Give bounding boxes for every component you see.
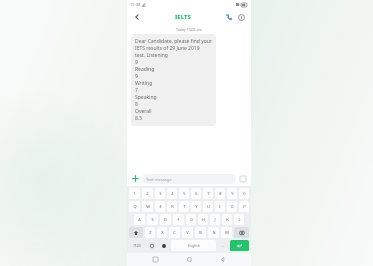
staticText: 3 (159, 191, 162, 196)
button[interactable]: F (173, 214, 184, 225)
button[interactable]: N (208, 227, 219, 238)
button[interactable]: 6 (191, 188, 201, 199)
staticText: test. Listening (135, 52, 168, 59)
button[interactable]: Backspace (234, 227, 249, 238)
button[interactable]: Emoji (147, 240, 157, 251)
button[interactable]: Back (131, 11, 143, 23)
button[interactable]: Recents (150, 254, 161, 265)
staticText: 7 (135, 87, 138, 94)
button[interactable]: P (239, 201, 249, 212)
staticText: 7 (207, 191, 210, 196)
button[interactable]: Y (191, 201, 201, 212)
staticText: W (146, 204, 150, 209)
staticText: D (164, 217, 167, 222)
button[interactable]: Home (184, 254, 195, 265)
staticText: 6 (195, 191, 198, 196)
staticText: T (183, 204, 186, 209)
button[interactable]: R (167, 201, 177, 212)
staticText: X (161, 230, 164, 235)
staticText: S (151, 217, 154, 222)
button[interactable]: 1 (129, 188, 140, 199)
button[interactable]: T (179, 201, 189, 212)
staticText: B (199, 230, 202, 235)
staticText: . (222, 243, 224, 248)
button[interactable]: Q (129, 201, 140, 212)
button[interactable]: 4 (167, 188, 177, 199)
button[interactable]: 8 (215, 188, 225, 199)
staticText: 8 (219, 191, 222, 196)
button[interactable]: S (147, 214, 158, 225)
staticText: 8 (135, 101, 138, 108)
staticText: ?123 (133, 243, 141, 248)
button[interactable]: Back (217, 254, 228, 265)
staticText: 0 (243, 191, 246, 196)
button[interactable]: L (234, 214, 244, 225)
button[interactable]: W (142, 201, 153, 212)
button[interactable]: Info (235, 11, 247, 23)
button[interactable]: 2 (142, 188, 153, 199)
button[interactable]: 7 (203, 188, 213, 199)
button[interactable]: 3 (155, 188, 165, 199)
button[interactable]: Dear Candidate, please find your (131, 34, 216, 126)
button[interactable]: A (134, 214, 145, 225)
button[interactable]: I (215, 201, 225, 212)
button[interactable]: D (160, 214, 171, 225)
button[interactable]: 5 (179, 188, 189, 199)
button[interactable]: H (198, 214, 208, 225)
staticText: M (225, 230, 229, 235)
button[interactable]: E (155, 201, 165, 212)
staticText: 8.5 (135, 115, 143, 122)
button[interactable]: U (203, 201, 213, 212)
button[interactable]: M (221, 227, 232, 238)
button[interactable]: G (186, 214, 196, 225)
staticText: J (214, 217, 216, 222)
staticText: P (243, 204, 246, 209)
staticText: N (212, 230, 216, 235)
button[interactable]: V (182, 227, 193, 238)
staticText: V (186, 230, 189, 235)
button[interactable]: Z (145, 227, 155, 238)
staticText: 9 (135, 59, 138, 66)
staticText: L (238, 217, 241, 222)
staticText: 2 (146, 191, 149, 196)
staticText: Q (133, 204, 137, 209)
button[interactable]: K (222, 214, 232, 225)
button[interactable]: B (195, 227, 206, 238)
staticText: A (138, 217, 141, 222)
button[interactable]: ?123 (129, 240, 145, 251)
staticText: Dear Candidate, please find your (135, 38, 212, 45)
button[interactable]: Add attachment (130, 173, 141, 184)
staticText: IELTS (175, 13, 191, 21)
staticText: K (226, 217, 229, 222)
staticText: Writing (135, 80, 153, 87)
staticText: English (188, 243, 200, 248)
staticText: 9 (231, 191, 234, 196)
staticText: H (202, 217, 205, 222)
button[interactable]: O (227, 201, 237, 212)
button[interactable]: Enter (230, 240, 249, 251)
staticText: Reading (135, 66, 155, 73)
button[interactable]: J (210, 214, 220, 225)
button[interactable]: Text message (142, 174, 236, 184)
staticText: C (173, 230, 176, 235)
button[interactable]: C (169, 227, 180, 238)
button[interactable]: Call (223, 11, 235, 23)
staticText: 9 (135, 73, 138, 80)
staticText: F (177, 217, 180, 222)
button[interactable]: Shift (129, 227, 143, 238)
button[interactable]: Change language (159, 240, 169, 251)
staticText: Z (149, 230, 152, 235)
staticText: Text message (146, 177, 172, 182)
staticText: U (207, 204, 210, 209)
staticText: 11:38 (130, 2, 141, 7)
staticText: Today 10:02 am (176, 27, 202, 32)
button[interactable]: Send (238, 174, 248, 184)
button[interactable]: 0 (239, 188, 249, 199)
staticText: R (171, 204, 174, 209)
button[interactable]: English (171, 240, 216, 251)
button[interactable]: X (157, 227, 167, 238)
staticText: Overall (135, 108, 152, 115)
button[interactable]: 9 (227, 188, 237, 199)
staticText: G (190, 217, 193, 222)
